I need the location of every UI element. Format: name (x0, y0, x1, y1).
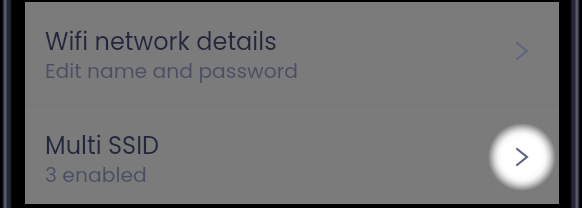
button[interactable]: Open Multi SSID (482, 123, 562, 191)
staticText: 3 enabled (45, 161, 147, 189)
button[interactable]: Wifi network details (25, 1, 559, 105)
staticText: Wifi network details (45, 25, 277, 59)
button[interactable]: Multi SSID (25, 105, 559, 208)
staticText: Edit name and password (45, 57, 298, 85)
button[interactable]: Open Wifi network details (482, 17, 562, 85)
staticText: Multi SSID (45, 129, 160, 163)
